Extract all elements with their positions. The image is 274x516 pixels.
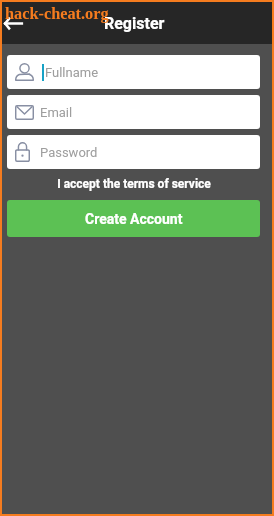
button[interactable]: Password [7, 135, 260, 169]
button[interactable]: Create Account [7, 200, 260, 237]
staticText: Register [104, 14, 165, 33]
button[interactable]: Back [2, 6, 28, 40]
staticText: Create Account [85, 211, 183, 227]
staticText: hack-cheat.org [5, 4, 109, 22]
button[interactable]: Email [7, 95, 260, 129]
button[interactable]: I accept the terms of service [7, 177, 260, 191]
staticText: Email [40, 105, 73, 120]
button[interactable]: Fullname [7, 55, 260, 89]
staticText: Fullname [45, 65, 99, 80]
staticText: I accept the terms of service [57, 177, 211, 191]
staticText: Password [40, 145, 98, 160]
